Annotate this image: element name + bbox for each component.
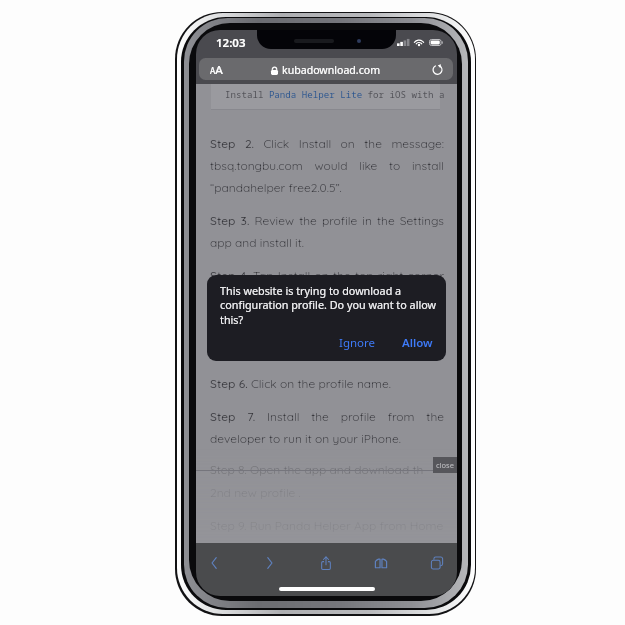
button[interactable]: Tabs: [421, 547, 453, 579]
staticText: Install Panda Helper Lite for iOS with a: [225, 88, 445, 100]
staticText: Step 8. Open the app and download th: [210, 462, 444, 477]
button[interactable]: AA: [199, 58, 453, 80]
staticText: Step 3. Review the profile in the Settin…: [210, 213, 444, 250]
staticText: AA: [210, 62, 223, 78]
staticText: kubadownload.com: [282, 63, 381, 77]
staticText: close: [436, 460, 454, 470]
staticText: Step 5. Go to General then Device Manage…: [210, 322, 444, 359]
other: Reload: [431, 63, 444, 76]
button[interactable]: close: [433, 457, 457, 473]
button[interactable]: Share: [310, 547, 342, 579]
staticText: Step 2. Click Install on the message: tb…: [210, 136, 444, 195]
staticText: Step 6. Click on the profile name.: [210, 376, 444, 391]
button[interactable]: Bookmarks: [365, 547, 397, 579]
button[interactable]: Ignore: [334, 332, 381, 354]
staticText: Ignore: [339, 335, 376, 351]
staticText: Step 4. Tap Install on the top right cor…: [210, 268, 444, 305]
button[interactable]: Forward: [254, 547, 286, 579]
button[interactable]: Back: [198, 547, 230, 579]
staticText: This website is trying to download a con…: [220, 283, 438, 328]
staticText: 12:03: [216, 35, 246, 51]
staticText: Allow: [402, 335, 433, 351]
button[interactable]: Allow: [397, 332, 438, 354]
staticText: Step 7. Install the profile from the dev…: [210, 409, 444, 446]
